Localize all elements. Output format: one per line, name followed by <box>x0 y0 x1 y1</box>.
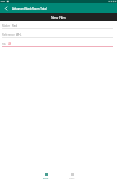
staticText: no. <box>2 42 7 46</box>
staticText: New Film <box>51 15 66 20</box>
staticText: 48 <box>8 42 12 46</box>
staticText: WH- <box>16 33 22 37</box>
button[interactable]: Back <box>0 3 12 13</box>
staticText: Next <box>69 176 75 179</box>
staticText: Red <box>12 24 17 28</box>
staticText: Maker <box>2 24 11 28</box>
staticText: Back <box>43 176 49 179</box>
button[interactable]: Back <box>39 172 53 180</box>
staticText: AdvancedStackRoom Total <box>12 7 47 11</box>
staticText: Reference <box>2 33 15 37</box>
button[interactable]: Next <box>65 172 79 180</box>
